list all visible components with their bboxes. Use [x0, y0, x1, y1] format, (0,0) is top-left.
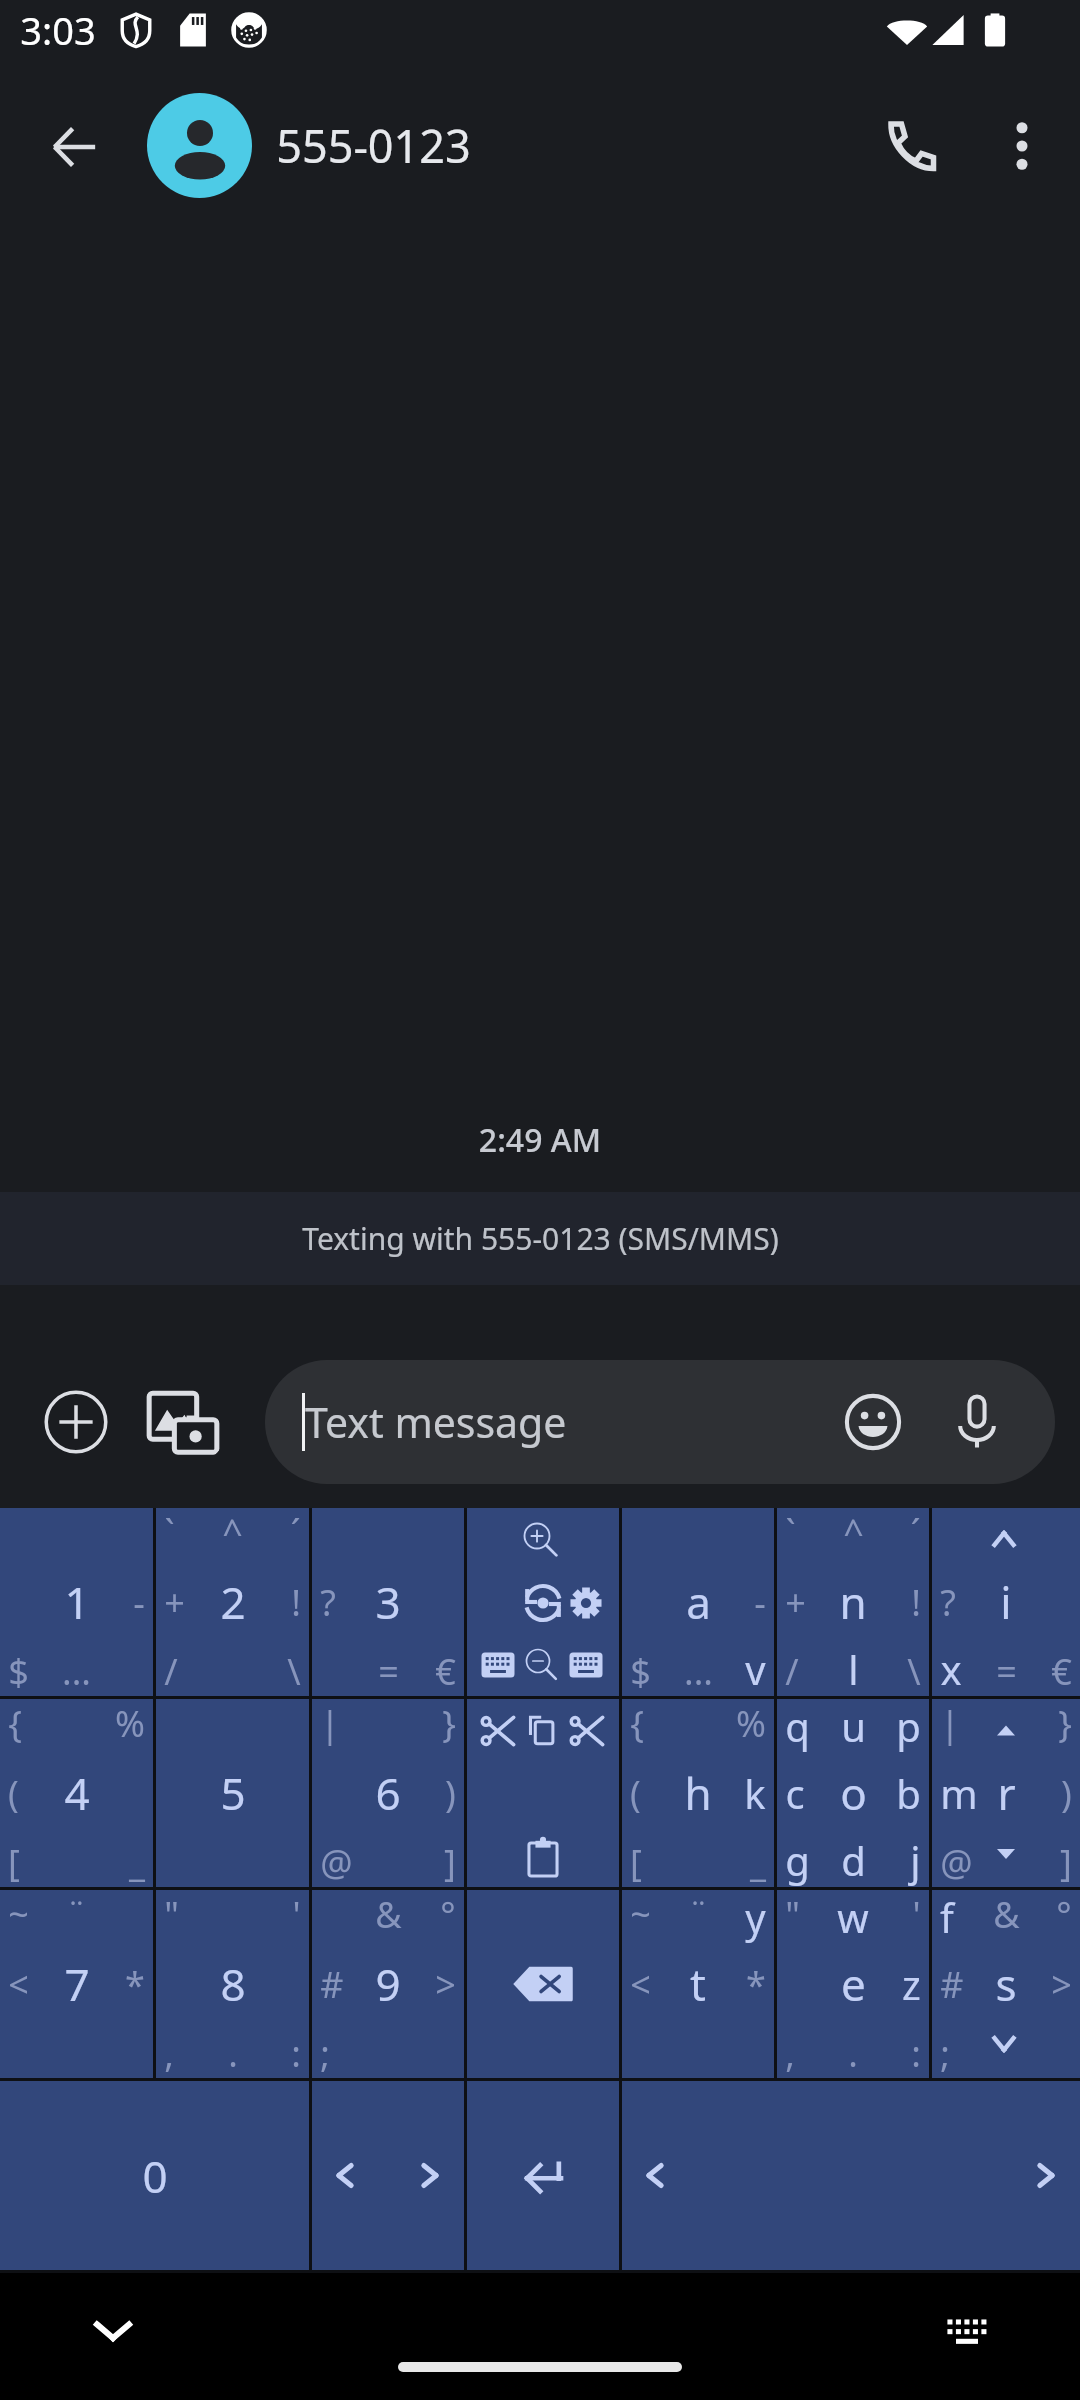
button[interactable]: |	[312, 1699, 464, 1887]
button[interactable]: 5	[156, 1699, 309, 1887]
button[interactable]: Keyboard settings	[467, 1508, 619, 1696]
staticText: {	[8, 1699, 22, 1748]
button[interactable]: ~	[0, 1890, 153, 2078]
staticText: 7	[64, 1954, 90, 2014]
staticText: ?	[940, 1578, 956, 1627]
staticText: ¨	[688, 1890, 709, 1939]
staticText: m	[940, 1766, 978, 1820]
staticText: %	[115, 1699, 145, 1748]
staticText: 9	[375, 1954, 401, 2014]
staticText: n	[839, 1572, 867, 1632]
staticText: a	[686, 1572, 711, 1632]
staticText: €	[1051, 1647, 1072, 1696]
button[interactable]: &	[312, 1890, 464, 2078]
staticText: s	[995, 1954, 1017, 2014]
staticText: ~	[8, 1890, 29, 1939]
staticText: >	[1051, 1960, 1072, 2009]
button[interactable]: Text message	[265, 1360, 1055, 1484]
staticText: =	[996, 1647, 1017, 1696]
staticText: (	[630, 1769, 641, 1818]
button[interactable]: Cut copy paste	[467, 1699, 619, 1887]
staticText: [	[630, 1838, 642, 1887]
staticText: -	[133, 1578, 145, 1627]
staticText: z	[902, 1957, 921, 2011]
staticText: e	[841, 1954, 866, 2014]
staticText: )	[445, 1769, 456, 1818]
staticText: `	[785, 1508, 796, 1557]
staticText: ?	[320, 1578, 336, 1627]
staticText: °	[440, 1890, 456, 1939]
button[interactable]: ?	[932, 1508, 1080, 1696]
button[interactable]: More options	[974, 98, 1070, 194]
button[interactable]: Add attachment	[30, 1376, 122, 1468]
staticText: =	[378, 1647, 399, 1696]
button[interactable]: q	[777, 1699, 929, 1887]
staticText: ;	[320, 2029, 330, 2078]
button[interactable]: Space	[622, 2081, 1080, 2270]
button[interactable]: "	[156, 1890, 309, 2078]
staticText: >	[435, 1960, 456, 2009]
button[interactable]: 0	[0, 2081, 309, 2270]
staticText: ^	[843, 1508, 864, 1557]
button[interactable]: {	[0, 1699, 153, 1887]
button[interactable]: "	[777, 1890, 929, 2078]
staticText: d	[841, 1833, 866, 1887]
staticText: /	[785, 1647, 799, 1696]
staticText: °	[1056, 1890, 1072, 1939]
staticText: 4	[64, 1763, 90, 1823]
staticText: 1	[64, 1572, 90, 1632]
staticText: @	[940, 1838, 973, 1887]
button[interactable]: Backspace	[467, 1890, 619, 2078]
button[interactable]: Back	[26, 99, 122, 195]
staticText: .	[848, 2029, 858, 2078]
button[interactable]: Emoji	[833, 1382, 913, 1462]
staticText: y	[745, 1890, 766, 1944]
staticText: 3:03	[20, 4, 96, 56]
button[interactable]: Attach image	[137, 1376, 229, 1468]
staticText: 8	[220, 1954, 246, 2014]
button[interactable]: `	[156, 1508, 309, 1696]
staticText: -	[754, 1578, 766, 1627]
staticText: 555-0123	[276, 115, 471, 176]
staticText: }	[1058, 1699, 1072, 1748]
staticText: j	[910, 1833, 921, 1887]
staticText: 2:49 AM	[0, 1118, 1080, 1162]
staticText: i	[1000, 1572, 1012, 1632]
staticText: #	[320, 1960, 344, 2009]
staticText: &	[993, 1890, 1020, 1939]
button[interactable]: Switch keyboard	[921, 2284, 1013, 2376]
button[interactable]: Enter	[467, 2081, 619, 2270]
button[interactable]: {	[622, 1699, 774, 1887]
button[interactable]: Move cursor	[312, 2081, 464, 2270]
button[interactable]: 555-0123	[147, 93, 471, 198]
staticText: b	[896, 1766, 921, 1820]
button[interactable]: Hide keyboard	[67, 2284, 159, 2376]
staticText: w	[837, 1890, 869, 1944]
staticText: <	[8, 1960, 29, 2009]
staticText: ...	[684, 1647, 713, 1696]
staticText: $	[8, 1647, 29, 1696]
button[interactable]: Call	[863, 98, 959, 194]
staticText: $	[630, 1647, 651, 1696]
staticText: ´	[290, 1508, 301, 1557]
staticText: Texting with 555-0123 (SMS/MMS)	[302, 1218, 779, 1259]
button[interactable]: Voice input	[937, 1382, 1017, 1462]
button[interactable]: ?	[312, 1508, 464, 1696]
staticText: ]	[1060, 1838, 1072, 1887]
staticText: *	[125, 1960, 145, 2009]
button[interactable]: |	[932, 1699, 1080, 1887]
button[interactable]: f	[932, 1890, 1080, 2078]
staticText: \	[287, 1647, 301, 1696]
staticText: c	[785, 1766, 805, 1820]
staticText: %	[736, 1699, 766, 1748]
button[interactable]: 1	[0, 1508, 153, 1696]
staticText: p	[896, 1699, 921, 1753]
staticText: '	[292, 1890, 301, 1939]
staticText: |	[320, 1699, 340, 1748]
button[interactable]: `	[777, 1508, 929, 1696]
button[interactable]: ~	[622, 1890, 774, 2078]
staticText: ´	[910, 1508, 921, 1557]
staticText: .	[228, 2029, 238, 2078]
button[interactable]: a	[622, 1508, 774, 1696]
staticText: "	[785, 1890, 800, 1939]
